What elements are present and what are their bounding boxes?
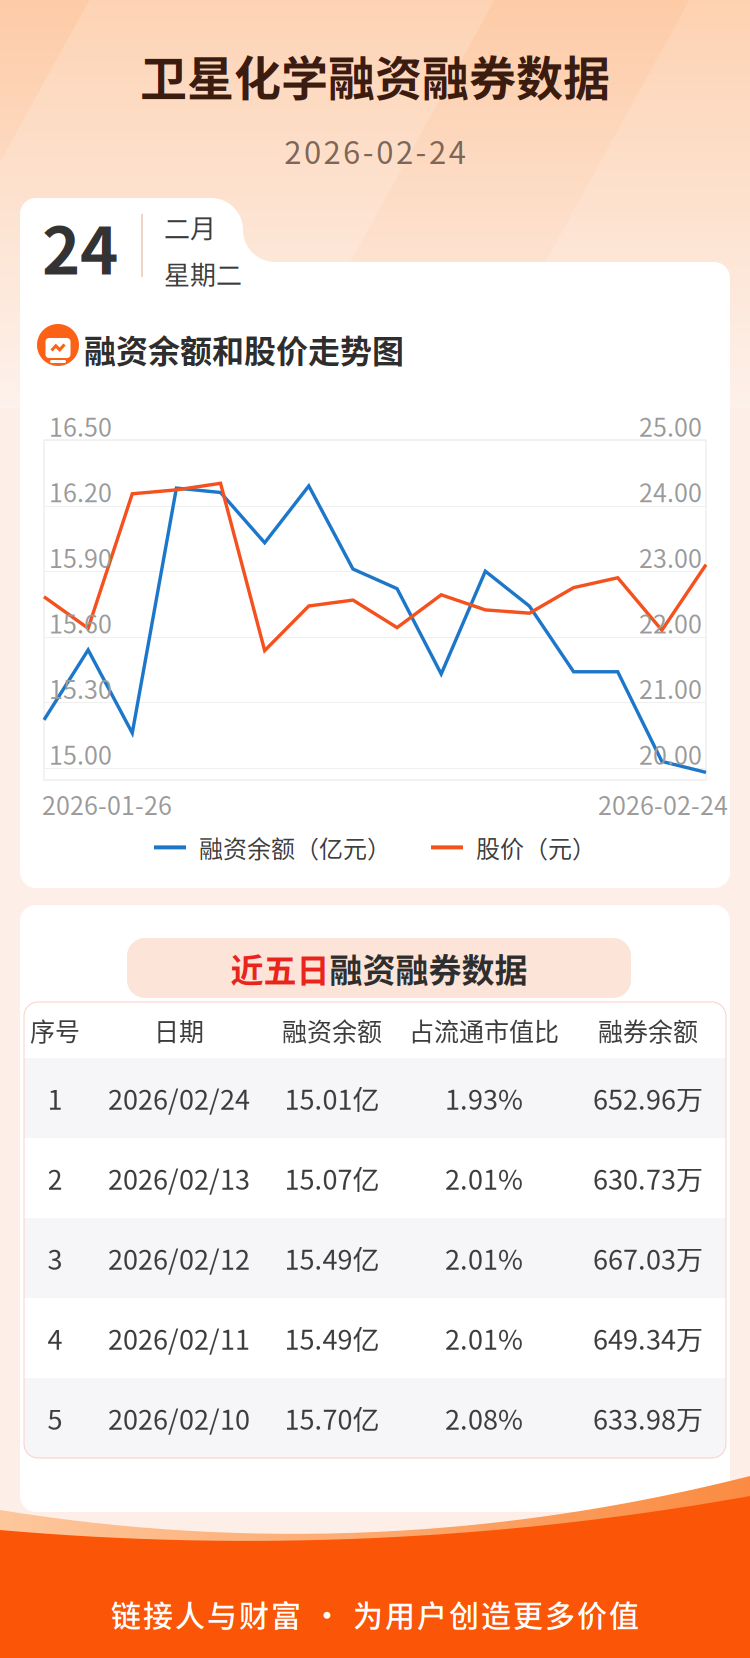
staticText: 2026/02/24 xyxy=(108,1078,250,1118)
staticText: 2.01% xyxy=(445,1158,523,1198)
staticText: 2026/02/10 xyxy=(108,1398,250,1438)
staticText: 二月 xyxy=(164,208,216,246)
staticText: 5 xyxy=(47,1398,62,1438)
staticText: 15.49亿 xyxy=(284,1238,379,1278)
staticText: 4 xyxy=(47,1318,62,1358)
staticText: 20.00 xyxy=(639,736,702,772)
staticText: 股价（元） xyxy=(476,830,596,865)
staticText: 2026-02-24 xyxy=(284,128,466,173)
staticText: 2.01% xyxy=(445,1238,523,1278)
staticText: 融资融券数据 xyxy=(329,944,527,992)
staticText: 652.96万 xyxy=(593,1078,703,1118)
staticText: 2026/02/11 xyxy=(108,1318,250,1358)
staticText: 融资余额 xyxy=(282,1012,382,1048)
staticText: 日期 xyxy=(154,1012,204,1048)
staticText: 15.00 xyxy=(49,736,112,772)
staticText: 2026-01-26 xyxy=(42,786,172,822)
staticText: 15.49亿 xyxy=(284,1318,379,1358)
staticText: 630.73万 xyxy=(593,1158,703,1198)
staticText: 1.93% xyxy=(445,1078,523,1118)
staticText: 2.01% xyxy=(445,1318,523,1358)
staticText: 25.00 xyxy=(639,408,702,444)
staticText: 3 xyxy=(47,1238,62,1278)
staticText: 序号 xyxy=(30,1012,80,1048)
staticText: 15.01亿 xyxy=(284,1078,379,1118)
staticText: 2 xyxy=(47,1158,62,1198)
staticText: 15.07亿 xyxy=(284,1158,379,1198)
staticText: 融资余额（亿元） xyxy=(199,830,391,865)
staticText: 2.08% xyxy=(445,1398,523,1438)
staticText: 卫星化学融资融券数据 xyxy=(140,41,610,109)
staticText: 1 xyxy=(47,1078,62,1118)
staticText: 649.34万 xyxy=(593,1318,703,1358)
staticText: 星期二 xyxy=(164,255,242,292)
staticText: 16.20 xyxy=(49,473,112,509)
staticText: 2026-02-24 xyxy=(598,786,728,822)
staticText: 链接人与财富 · 为用户创造更多价值 xyxy=(111,1592,639,1635)
staticText: 667.03万 xyxy=(593,1238,703,1278)
staticText: 融资余额和股价走势图 xyxy=(84,326,404,372)
staticText: 占流通市值比 xyxy=(409,1012,559,1048)
staticText: 23.00 xyxy=(639,539,702,575)
staticText: 15.90 xyxy=(49,539,112,575)
staticText: 2026/02/13 xyxy=(108,1158,250,1198)
staticText: 24 xyxy=(42,199,118,293)
staticText: 15.70亿 xyxy=(284,1398,379,1438)
staticText: 633.98万 xyxy=(593,1398,703,1438)
staticText: 24.00 xyxy=(639,473,702,509)
staticText: 15.30 xyxy=(49,670,112,706)
staticText: 近五日 xyxy=(230,944,329,992)
staticText: 融券余额 xyxy=(598,1012,698,1048)
staticText: 15.60 xyxy=(49,604,112,641)
staticText: 21.00 xyxy=(639,670,702,706)
staticText: 2026/02/12 xyxy=(108,1238,250,1278)
staticText: 16.50 xyxy=(49,408,112,444)
staticText: 22.00 xyxy=(639,604,702,641)
